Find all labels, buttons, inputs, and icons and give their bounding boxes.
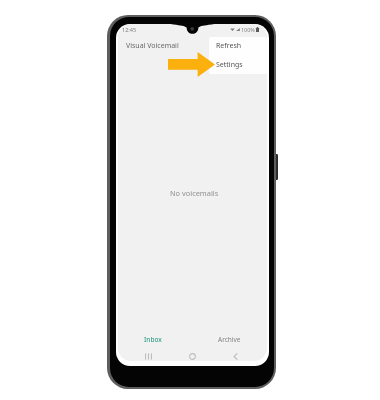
staticText: 100%: [241, 26, 255, 33]
staticText: No voicemails: [170, 188, 219, 198]
button[interactable]: Refresh: [209, 37, 267, 55]
button[interactable]: Back: [226, 349, 244, 361]
button[interactable]: Home: [183, 349, 201, 361]
staticText: Archive: [218, 335, 241, 344]
staticText: Visual Voicemail: [126, 41, 179, 51]
button[interactable]: Archive: [196, 330, 262, 348]
staticText: Settings: [216, 60, 243, 70]
button[interactable]: Settings: [209, 55, 267, 74]
staticText: Refresh: [216, 41, 242, 51]
button[interactable]: Recent apps: [139, 349, 157, 361]
staticText: 12:45: [122, 26, 137, 33]
button[interactable]: Inbox: [120, 330, 186, 348]
staticText: Inbox: [144, 335, 162, 344]
